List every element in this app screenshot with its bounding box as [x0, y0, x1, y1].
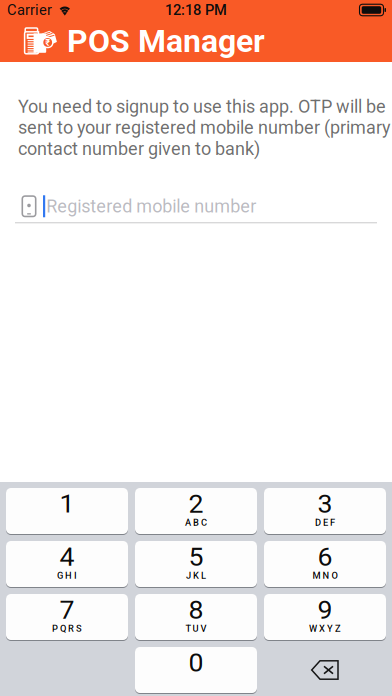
- staticText: 12:18 PM: [165, 1, 227, 19]
- button[interactable]: 5: [135, 541, 257, 587]
- button[interactable]: 8: [135, 594, 257, 640]
- staticText: M N O: [312, 570, 337, 581]
- staticText: 0: [188, 647, 203, 678]
- button[interactable]: 0: [135, 647, 257, 693]
- staticText: D E F: [315, 517, 335, 528]
- staticText: 7: [59, 594, 74, 625]
- staticText: 6: [317, 541, 332, 572]
- staticText: ₹: [45, 37, 50, 48]
- button[interactable]: 7: [6, 594, 128, 640]
- staticText: Carrier: [7, 1, 52, 19]
- staticText: 5: [188, 541, 203, 572]
- staticText: G H I: [57, 570, 77, 581]
- staticText: T U V: [185, 623, 206, 634]
- button[interactable]: 3: [264, 488, 386, 534]
- button[interactable]: 1: [6, 488, 128, 534]
- button[interactable]: 2: [135, 488, 257, 534]
- staticText: POS Manager: [67, 22, 265, 60]
- staticText: 4: [59, 541, 74, 572]
- staticText: 1: [59, 488, 74, 519]
- staticText: P Q R S: [52, 623, 82, 634]
- staticText: Registered mobile number: [46, 196, 256, 217]
- staticText: You need to signup to use this app. OTP …: [18, 96, 391, 159]
- button[interactable]: 4: [6, 541, 128, 587]
- button[interactable]: 6: [264, 541, 386, 587]
- staticText: A B C: [185, 517, 207, 528]
- staticText: 9: [317, 594, 332, 625]
- staticText: 3: [317, 488, 332, 519]
- staticText: 8: [188, 594, 203, 625]
- staticText: 2: [188, 488, 203, 519]
- staticText: W X Y Z: [309, 623, 341, 634]
- button[interactable]: 9: [264, 594, 386, 640]
- button[interactable]: Delete: [264, 647, 386, 693]
- staticText: J K L: [186, 570, 206, 581]
